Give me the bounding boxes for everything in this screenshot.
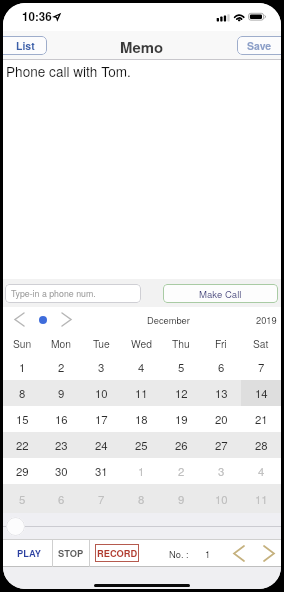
staticText: 20: [215, 411, 228, 427]
button[interactable]: 12: [161, 380, 201, 406]
staticText: 15: [16, 411, 29, 427]
button[interactable]: 2: [161, 458, 201, 484]
button[interactable]: 6: [42, 484, 81, 513]
button[interactable]: 9: [42, 380, 81, 406]
button[interactable]: List: [3, 36, 47, 55]
button[interactable]: 29: [3, 458, 42, 484]
button[interactable]: 15: [3, 406, 42, 432]
button[interactable]: 11: [241, 484, 281, 513]
button[interactable]: 3: [201, 458, 241, 484]
staticText: Thu: [172, 336, 190, 351]
staticText: 11: [255, 491, 268, 507]
staticText: 2: [58, 359, 65, 375]
staticText: 1: [205, 547, 211, 560]
staticText: 5: [178, 359, 185, 375]
button[interactable]: 10: [81, 380, 121, 406]
staticText: 22: [16, 437, 29, 453]
staticText: 27: [215, 437, 228, 453]
staticText: 4: [258, 463, 265, 479]
button[interactable]: 27: [201, 432, 241, 458]
button[interactable]: Previous month: [9, 309, 30, 330]
staticText: 31: [95, 463, 108, 479]
button[interactable]: 11: [121, 380, 161, 406]
button[interactable]: 14: [241, 380, 281, 406]
staticText: 9: [58, 385, 65, 401]
staticText: STOP: [58, 547, 84, 560]
button[interactable]: 20: [201, 406, 241, 432]
button[interactable]: 5: [161, 354, 201, 380]
staticText: Mon: [51, 336, 72, 351]
staticText: Sat: [253, 336, 269, 351]
staticText: 2: [178, 463, 185, 479]
staticText: 18: [135, 411, 148, 427]
staticText: 24: [95, 437, 108, 453]
button[interactable]: 28: [241, 432, 281, 458]
button[interactable]: 31: [81, 458, 121, 484]
button[interactable]: 4: [241, 458, 281, 484]
staticText: 7: [98, 491, 105, 507]
button[interactable]: 19: [161, 406, 201, 432]
button[interactable]: Previous memo: [226, 541, 251, 566]
staticText: PLAY: [17, 547, 42, 560]
staticText: 26: [175, 437, 188, 453]
staticText: 12: [175, 385, 188, 401]
button[interactable]: 26: [161, 432, 201, 458]
staticText: 16: [55, 411, 68, 427]
staticText: 1: [138, 463, 145, 479]
button[interactable]: STOP: [52, 539, 89, 567]
button[interactable]: December: [147, 313, 190, 326]
staticText: 13: [215, 385, 228, 401]
button[interactable]: 3: [81, 354, 121, 380]
staticText: Wed: [131, 336, 152, 351]
button[interactable]: Save: [237, 36, 281, 55]
staticText: 6: [58, 491, 65, 507]
button[interactable]: 1: [121, 458, 161, 484]
staticText: RECORD: [97, 547, 138, 560]
button[interactable]: Next month: [56, 309, 77, 330]
button[interactable]: 18: [121, 406, 161, 432]
staticText: December: [147, 313, 190, 326]
button[interactable]: 22: [3, 432, 42, 458]
button[interactable]: Type-in a phone num.: [5, 284, 141, 303]
staticText: Tue: [93, 336, 110, 351]
button[interactable]: 23: [42, 432, 81, 458]
button[interactable]: 9: [161, 484, 201, 513]
staticText: 1: [19, 359, 26, 375]
button[interactable]: 6: [201, 354, 241, 380]
button[interactable]: 8: [3, 380, 42, 406]
staticText: List: [16, 38, 35, 53]
button[interactable]: 13: [201, 380, 241, 406]
button[interactable]: 1: [3, 354, 42, 380]
staticText: Phone call with Tom.: [6, 61, 131, 80]
staticText: Sun: [13, 336, 32, 351]
staticText: 14: [255, 385, 268, 401]
staticText: 10:36: [22, 8, 52, 25]
button[interactable]: 24: [81, 432, 121, 458]
button[interactable]: 2019: [256, 313, 277, 326]
staticText: Save: [247, 38, 272, 53]
button[interactable]: 7: [81, 484, 121, 513]
button[interactable]: 30: [42, 458, 81, 484]
button[interactable]: 7: [241, 354, 281, 380]
button[interactable]: Playback position: [6, 517, 25, 536]
button[interactable]: 8: [121, 484, 161, 513]
staticText: 7: [258, 359, 265, 375]
button[interactable]: 21: [241, 406, 281, 432]
button[interactable]: 4: [121, 354, 161, 380]
button[interactable]: RECORD: [95, 544, 139, 562]
button[interactable]: Today: [32, 309, 53, 330]
button[interactable]: 16: [42, 406, 81, 432]
button[interactable]: PLAY: [6, 539, 52, 567]
staticText: 17: [95, 411, 108, 427]
button[interactable]: Next memo: [256, 541, 281, 566]
staticText: 25: [135, 437, 148, 453]
staticText: 3: [98, 359, 105, 375]
button[interactable]: 5: [3, 484, 42, 513]
button[interactable]: 25: [121, 432, 161, 458]
button[interactable]: 17: [81, 406, 121, 432]
staticText: Memo: [120, 36, 164, 57]
staticText: 5: [19, 491, 26, 507]
button[interactable]: 2: [42, 354, 81, 380]
button[interactable]: 10: [201, 484, 241, 513]
button[interactable]: Make Call: [163, 284, 278, 303]
